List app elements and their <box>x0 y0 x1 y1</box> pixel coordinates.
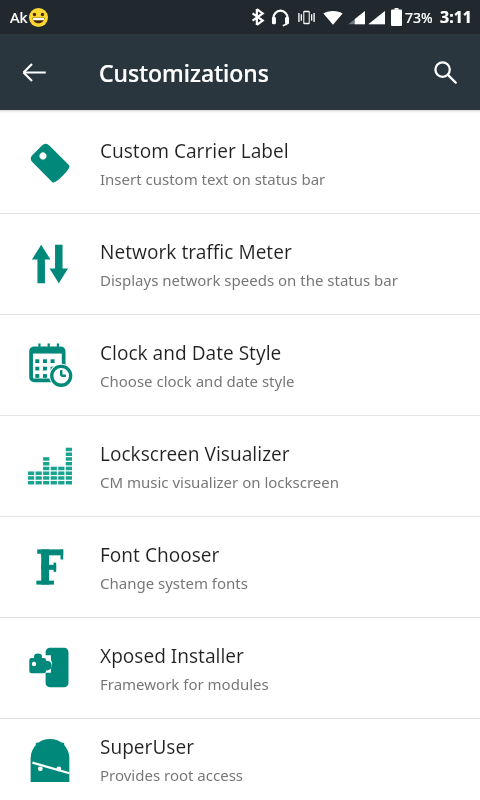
button[interactable]: Font Chooser <box>0 517 480 617</box>
button[interactable]: Back <box>8 46 60 98</box>
staticText: Change system fonts <box>100 573 248 593</box>
staticText: Lockscreen Visualizer <box>100 441 290 467</box>
staticText: CM music visualizer on lockscreen <box>100 472 340 492</box>
staticText: Network traffic Meter <box>100 239 292 265</box>
staticText: Xposed Installer <box>100 643 244 669</box>
button[interactable]: Search <box>419 46 471 98</box>
staticText: Insert custom text on status bar <box>100 169 326 189</box>
staticText: Customizations <box>99 57 269 88</box>
staticText: 3:11 <box>440 6 472 28</box>
button[interactable]: Network traffic Meter <box>0 214 480 314</box>
staticText: Displays network speeds on the status ba… <box>100 270 398 290</box>
button[interactable]: Custom Carrier Label <box>0 113 480 213</box>
button[interactable]: Clock and Date Style <box>0 315 480 415</box>
staticText: 73% <box>405 8 433 27</box>
staticText: SuperUser <box>100 734 194 760</box>
staticText: Provides root access <box>100 765 244 785</box>
button[interactable]: SuperUser <box>0 719 480 800</box>
button[interactable]: Xposed Installer <box>0 618 480 718</box>
staticText: Font Chooser <box>100 542 220 568</box>
staticText: Choose clock and date style <box>100 371 295 391</box>
staticText: Framework for modules <box>100 674 269 694</box>
staticText: Clock and Date Style <box>100 340 282 366</box>
staticText: Custom Carrier Label <box>100 138 289 164</box>
staticText: Ak <box>10 7 28 27</box>
button[interactable]: Lockscreen Visualizer <box>0 416 480 516</box>
